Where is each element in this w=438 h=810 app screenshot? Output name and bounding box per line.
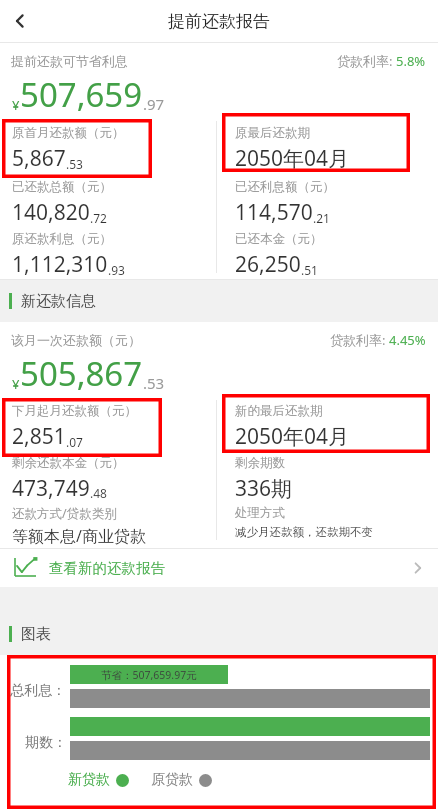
staticText: 贷款利率: <box>337 52 396 70</box>
staticText: .21 <box>313 210 330 226</box>
staticText: 507,659 <box>20 72 143 117</box>
staticText: 505,867 <box>20 351 143 396</box>
staticText: 下月起月还款额（元） <box>12 403 137 419</box>
staticText: ¥ <box>12 96 20 114</box>
staticText: 剩余还款本金（元） <box>12 455 125 471</box>
staticText: 新的最后还款期 <box>235 403 323 419</box>
staticText: .48 <box>90 485 107 501</box>
staticText: 提前还款报告 <box>168 11 270 32</box>
staticText: 查看新的还款报告 <box>49 559 165 577</box>
staticText: 5.8% <box>396 52 426 70</box>
staticText: 贷款利率: <box>330 331 389 349</box>
staticText: 4.45% <box>389 331 426 349</box>
staticText: 节省：507,659.97元 <box>101 668 197 682</box>
button[interactable]: 查看新的还款报告 <box>0 549 438 587</box>
staticText: 已还款总额（元） <box>12 179 112 195</box>
staticText: 2050年04月 <box>235 422 350 451</box>
staticText: .53 <box>143 373 165 393</box>
staticText: 1,112,310 <box>12 250 108 279</box>
staticText: .93 <box>108 262 125 278</box>
staticText: 总利息： <box>10 682 66 700</box>
staticText: 2,851 <box>12 422 66 451</box>
staticText: 等额本息/商业贷款 <box>12 525 146 547</box>
staticText: 该月一次还款额（元） <box>11 332 141 348</box>
staticText: 原还款利息（元） <box>12 231 112 247</box>
staticText: .72 <box>90 210 107 226</box>
staticText: 处理方式 <box>235 505 285 521</box>
staticText: 26,250 <box>235 250 301 279</box>
staticText: ¥ <box>12 375 20 393</box>
staticText: 减少月还款额，还款期不变 <box>235 525 373 539</box>
staticText: .51 <box>301 262 318 278</box>
staticText: 提前还款可节省利息 <box>11 53 128 69</box>
staticText: 原最后还款期 <box>235 125 310 141</box>
staticText: 2050年04月 <box>235 144 350 173</box>
staticText: 原首月还款额（元） <box>12 125 125 141</box>
staticText: 已还本金（元） <box>235 231 323 247</box>
staticText: 还款方式/贷款类别 <box>12 505 117 522</box>
staticText: 新还款信息 <box>21 292 96 311</box>
staticText: .07 <box>66 434 83 450</box>
staticText: 140,820 <box>12 198 90 227</box>
staticText: .97 <box>143 94 165 114</box>
staticText: 已还利息额（元） <box>235 179 335 195</box>
staticText: 图表 <box>21 625 51 644</box>
staticText: 剩余期数 <box>235 455 285 471</box>
staticText: 期数： <box>25 734 67 752</box>
staticText: .53 <box>66 156 83 172</box>
button[interactable]: Back <box>0 0 42 42</box>
staticText: 新贷款 <box>68 771 110 789</box>
staticText: 473,749 <box>12 474 90 502</box>
staticText: 5,867 <box>12 144 66 173</box>
staticText: 336期 <box>235 474 293 502</box>
staticText: 原贷款 <box>151 771 193 789</box>
staticText: 114,570 <box>235 198 313 227</box>
